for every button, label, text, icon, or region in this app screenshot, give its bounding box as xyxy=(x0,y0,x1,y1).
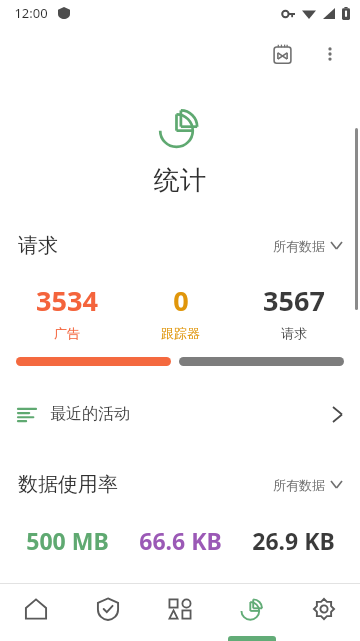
staticText: 12:00 xyxy=(14,4,48,22)
button[interactable]: Home xyxy=(0,584,72,641)
button[interactable]: Protection xyxy=(72,584,144,641)
staticText: 500 MB xyxy=(26,525,109,556)
button[interactable]: Statistics xyxy=(216,584,288,641)
staticText: 请求 xyxy=(281,325,307,341)
button[interactable]: 请求 xyxy=(0,233,360,258)
staticText: 26.9 KB xyxy=(252,525,335,556)
staticText: 跟踪器 xyxy=(161,325,200,341)
staticText: 数据使用率 xyxy=(18,472,118,497)
staticText: 广告 xyxy=(54,325,80,341)
staticText: 所有数据 xyxy=(273,477,325,493)
button[interactable]: Settings xyxy=(288,584,360,641)
staticText: 3567 xyxy=(263,282,325,319)
staticText: 66.6 KB xyxy=(139,525,222,556)
button[interactable]: 数据使用率 xyxy=(0,472,360,497)
staticText: 0 xyxy=(173,282,189,319)
button[interactable]: 3567 xyxy=(237,282,350,341)
button[interactable]: 最近的活动 xyxy=(0,392,360,436)
staticText: 统计 xyxy=(154,164,206,197)
staticText: 3534 xyxy=(36,282,98,319)
button[interactable]: 3534 xyxy=(10,282,124,341)
button[interactable]: 0 xyxy=(124,282,237,341)
staticText: 最近的活动 xyxy=(50,404,130,424)
button[interactable]: Apps xyxy=(144,584,216,641)
button[interactable]: Calendar range xyxy=(258,30,306,78)
button[interactable]: More options xyxy=(306,30,354,78)
staticText: 所有数据 xyxy=(273,238,325,254)
staticText: 请求 xyxy=(18,233,58,258)
